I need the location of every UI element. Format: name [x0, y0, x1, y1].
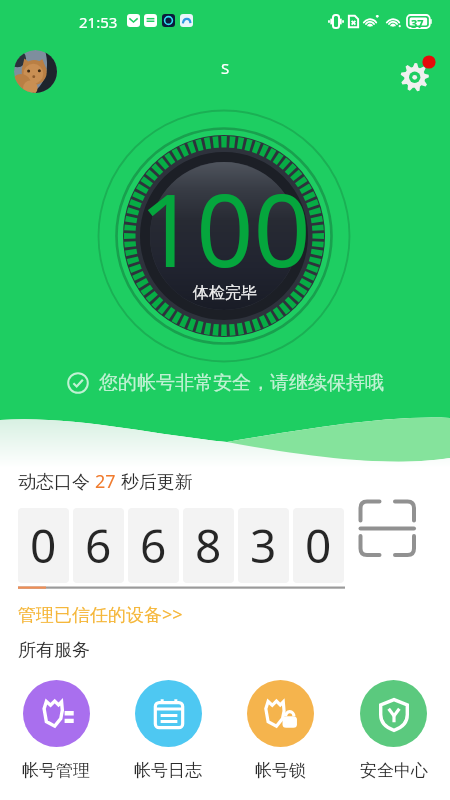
staticText: 6	[140, 514, 167, 577]
staticText: 100	[139, 160, 311, 296]
staticText: 您的帐号非常安全，请继续保持哦	[99, 371, 384, 395]
button[interactable]: Profile	[14, 50, 57, 93]
staticText: 37	[411, 16, 424, 31]
staticText: 8	[195, 514, 222, 577]
staticText: 秒后更新	[116, 469, 193, 494]
staticText: 所有服务	[18, 639, 90, 662]
staticText: S	[221, 58, 230, 78]
button[interactable]: 管理已信任的设备>>	[18, 602, 183, 627]
staticText: 管理已信任的设备>>	[18, 602, 183, 627]
button[interactable]: 帐号日志	[112, 680, 224, 781]
button[interactable]: 帐号锁	[224, 680, 337, 781]
staticText: 安全中心	[360, 760, 428, 781]
staticText: 0	[305, 514, 332, 577]
button[interactable]: Scan QR code	[352, 494, 422, 564]
staticText: 6	[85, 514, 112, 577]
staticText: 动态口令	[18, 469, 95, 494]
button[interactable]: Settings	[396, 52, 434, 90]
staticText: 体检完毕	[193, 283, 257, 303]
staticText: 3	[250, 514, 277, 577]
staticText: 帐号锁	[255, 760, 306, 781]
button[interactable]: 帐号管理	[0, 680, 112, 781]
staticText: 帐号管理	[22, 760, 90, 781]
button[interactable]: 安全中心	[337, 680, 450, 781]
staticText: 帐号日志	[134, 760, 202, 781]
staticText: 21:53	[79, 12, 118, 32]
staticText: 0	[30, 514, 57, 577]
staticText: 27	[95, 469, 116, 494]
